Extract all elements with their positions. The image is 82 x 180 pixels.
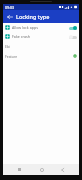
button[interactable]: Toggle off [69,35,77,39]
staticText: Ebi [5,44,77,49]
button[interactable]: Home [36,164,47,175]
staticText: Feature [5,54,73,59]
button[interactable]: Navigate up [3,10,16,23]
staticText: Locking type [16,13,50,20]
button[interactable]: Back [57,164,68,175]
button[interactable]: Allow lock apps [3,23,79,32]
button[interactable]: Recent apps [14,164,25,175]
button[interactable]: Ebi [3,41,79,51]
button[interactable]: Toggle on [69,26,77,30]
staticText: Fake crash [12,34,69,39]
button[interactable]: Fake crash [3,32,79,41]
staticText: 09:03 [5,5,14,10]
staticText: Allow lock apps [12,25,69,30]
button[interactable]: Feature [3,51,79,61]
